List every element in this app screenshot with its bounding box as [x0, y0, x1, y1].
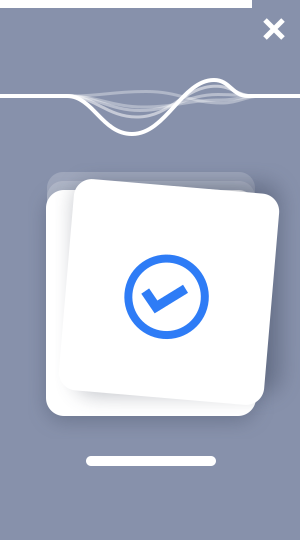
- button[interactable]: Close: [254, 9, 294, 49]
